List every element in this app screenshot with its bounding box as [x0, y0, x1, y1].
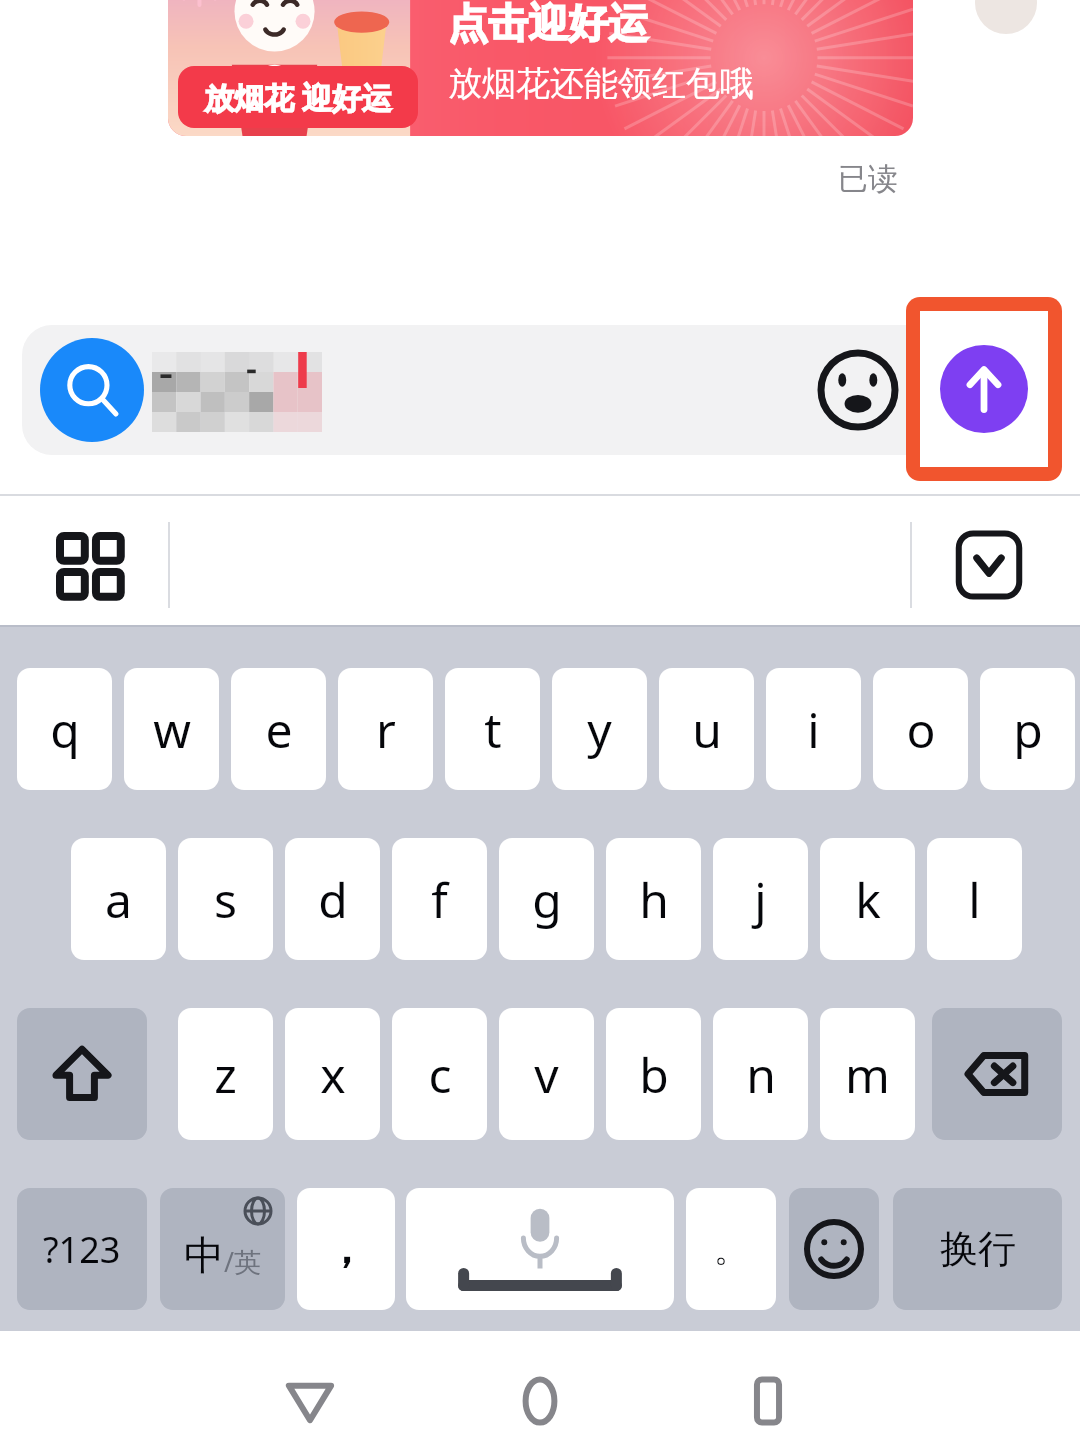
staticText: 放烟花 迎好运 — [204, 77, 392, 118]
button[interactable]: Emoji keyboard — [789, 1188, 879, 1310]
button[interactable]: Comma — [297, 1188, 395, 1310]
button[interactable]: Back — [258, 1349, 362, 1452]
button[interactable]: n — [713, 1008, 808, 1140]
button[interactable]: d — [285, 838, 380, 960]
button[interactable]: s — [178, 838, 273, 960]
staticText: u — [692, 697, 722, 762]
button[interactable] — [22, 325, 1022, 455]
button[interactable]: f — [392, 838, 487, 960]
staticText: k — [855, 867, 881, 932]
button[interactable]: Send — [920, 311, 1048, 467]
button[interactable]: g — [499, 838, 594, 960]
button[interactable]: e — [231, 668, 326, 790]
button[interactable]: l — [927, 838, 1022, 960]
button[interactable]: v — [499, 1008, 594, 1140]
staticText: 已读 — [838, 160, 898, 198]
button[interactable]: u — [659, 668, 754, 790]
button[interactable]: More options — [52, 528, 130, 606]
button[interactable]: Symbols — [17, 1188, 147, 1310]
button[interactable]: Home — [488, 1349, 592, 1452]
staticText: d — [318, 867, 348, 932]
staticText: l — [968, 867, 981, 932]
staticText: y — [587, 697, 612, 762]
button[interactable]: Recent apps — [716, 1349, 820, 1452]
staticText: s — [214, 867, 237, 932]
staticText: q — [50, 697, 80, 762]
button[interactable]: i — [766, 668, 861, 790]
staticText: n — [746, 1042, 776, 1107]
staticText: ?123 — [43, 1225, 121, 1274]
staticText: p — [1013, 697, 1043, 762]
staticText: 。 — [714, 1228, 748, 1271]
button[interactable]: h — [606, 838, 701, 960]
staticText: z — [214, 1042, 237, 1107]
button[interactable]: Search — [40, 338, 144, 442]
staticText: j — [754, 867, 767, 932]
button[interactable]: c — [392, 1008, 487, 1140]
staticText: x — [320, 1042, 346, 1107]
staticText: 放烟花还能领红包哦 — [448, 62, 754, 105]
button[interactable]: k — [820, 838, 915, 960]
button[interactable]: w — [124, 668, 219, 790]
staticText: 换行 — [940, 1225, 1016, 1273]
staticText: e — [265, 697, 293, 762]
button[interactable]: Backspace — [932, 1008, 1062, 1140]
button[interactable]: x — [285, 1008, 380, 1140]
button[interactable]: Shift — [17, 1008, 147, 1140]
staticText: v — [534, 1042, 559, 1107]
staticText: o — [906, 697, 936, 762]
button[interactable]: Emoji — [815, 347, 901, 433]
button[interactable]: Hide keyboard — [952, 530, 1026, 600]
button[interactable]: Language — [160, 1188, 285, 1310]
staticText: h — [639, 867, 669, 932]
staticText: 中 — [184, 1230, 224, 1280]
button[interactable]: Space — [406, 1188, 674, 1310]
button[interactable]: b — [606, 1008, 701, 1140]
button[interactable]: Enter — [893, 1188, 1062, 1310]
button[interactable]: z — [178, 1008, 273, 1140]
button[interactable]: y — [552, 668, 647, 790]
staticText: m — [845, 1042, 890, 1107]
button[interactable]: o — [873, 668, 968, 790]
staticText: g — [532, 867, 562, 932]
staticText: /英 — [224, 1243, 262, 1280]
staticText: 点击迎好运 — [448, 0, 648, 48]
staticText: w — [153, 697, 191, 762]
button[interactable]: j — [713, 838, 808, 960]
button[interactable]: p — [980, 668, 1075, 790]
staticText: ， — [326, 1224, 366, 1274]
button[interactable]: t — [445, 668, 540, 790]
button[interactable]: a — [71, 838, 166, 960]
staticText: r — [376, 697, 396, 762]
staticText: t — [484, 697, 502, 762]
button[interactable]: q — [17, 668, 112, 790]
button[interactable]: r — [338, 668, 433, 790]
button[interactable]: 放烟花 迎好运 — [168, 0, 913, 136]
staticText: f — [431, 867, 448, 932]
button[interactable]: Period — [686, 1188, 776, 1310]
staticText: a — [105, 867, 132, 932]
staticText: i — [807, 697, 820, 762]
button[interactable]: m — [820, 1008, 915, 1140]
staticText: b — [639, 1042, 669, 1107]
staticText: c — [428, 1042, 452, 1107]
